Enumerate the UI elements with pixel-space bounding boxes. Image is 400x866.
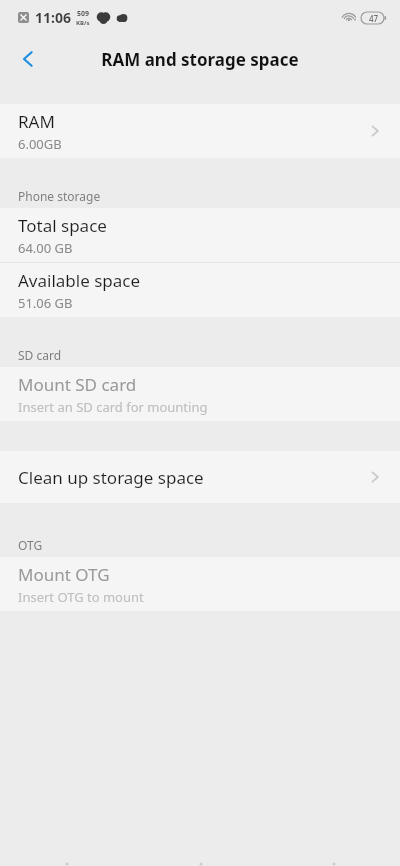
button[interactable]: Mount OTG xyxy=(0,557,400,611)
staticText: Phone storage xyxy=(18,188,101,204)
staticText: Mount SD card xyxy=(18,373,137,396)
staticText: 509 xyxy=(77,9,90,19)
staticText: RAM and storage space xyxy=(101,48,299,71)
button[interactable]: Mount SD card xyxy=(0,367,400,421)
staticText: RAM xyxy=(18,110,55,133)
staticText: KB/s xyxy=(76,19,90,27)
staticText: 47 xyxy=(369,13,379,24)
staticText: Available space xyxy=(18,269,141,292)
staticText: Mount OTG xyxy=(18,563,110,586)
button[interactable]: Back xyxy=(4,35,52,83)
staticText: Clean up storage space xyxy=(18,466,366,489)
staticText: 64.00 GB xyxy=(18,239,73,257)
staticText: Insert OTG to mount xyxy=(18,588,144,606)
staticText: 6.00GB xyxy=(18,135,62,153)
button[interactable]: Total space xyxy=(0,208,400,262)
staticText: OTG xyxy=(18,537,43,553)
staticText: Insert an SD card for mounting xyxy=(18,398,208,416)
button[interactable]: Available space xyxy=(0,263,400,317)
staticText: Total space xyxy=(18,214,107,237)
button[interactable]: Clean up storage space xyxy=(0,451,400,503)
staticText: 11:06 xyxy=(35,8,71,27)
staticText: 51.06 GB xyxy=(18,294,73,312)
button[interactable]: RAM xyxy=(0,104,400,158)
staticText: SD card xyxy=(18,347,62,363)
